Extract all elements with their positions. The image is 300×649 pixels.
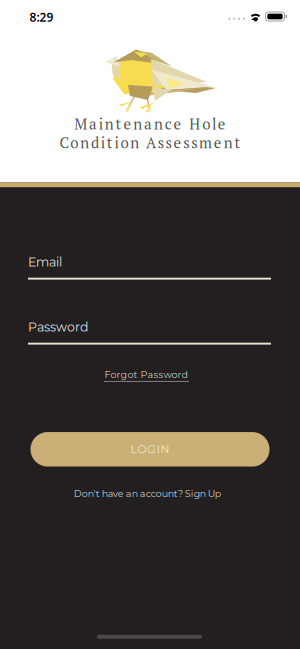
button[interactable]: Forgot Password bbox=[104, 369, 189, 382]
staticText: Forgot Password bbox=[104, 369, 188, 380]
staticText: Email bbox=[28, 254, 62, 270]
button[interactable]: Password bbox=[28, 319, 271, 345]
staticText: LOGIN bbox=[130, 443, 169, 456]
staticText: Don't have an account? Sign Up bbox=[74, 488, 221, 499]
button[interactable]: LOGIN bbox=[30, 432, 269, 467]
staticText: Maintenance Hole bbox=[74, 114, 226, 134]
staticText: Condition Assessment bbox=[59, 133, 240, 152]
button[interactable]: Email bbox=[28, 254, 271, 280]
staticText: Password bbox=[28, 319, 88, 335]
staticText: 8:29 bbox=[29, 9, 53, 25]
button[interactable]: Don't have an account? Sign Up bbox=[74, 488, 221, 499]
